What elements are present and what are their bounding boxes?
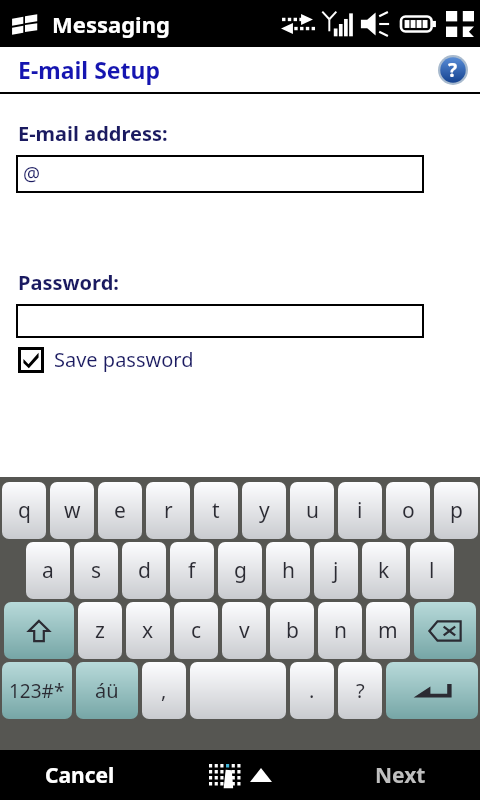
button[interactable]: s [74, 542, 118, 599]
staticText: h [282, 556, 295, 585]
staticText: j [333, 556, 339, 585]
button[interactable] [190, 662, 286, 719]
staticText: w [64, 496, 81, 525]
button[interactable] [16, 304, 424, 338]
button[interactable]: o [386, 482, 430, 539]
button[interactable]: d [122, 542, 166, 599]
staticText: l [429, 556, 435, 585]
staticText: k [378, 556, 390, 585]
staticText: a [42, 556, 54, 585]
button[interactable]: , [142, 662, 186, 719]
staticText: E-mail Setup [18, 54, 161, 85]
staticText: s [91, 556, 102, 585]
button[interactable]: ? [338, 662, 382, 719]
button[interactable]: w [50, 482, 94, 539]
staticText: Cancel [45, 761, 115, 790]
button[interactable]: Shift [4, 602, 74, 659]
staticText: f [188, 556, 196, 585]
button[interactable]: Help [438, 55, 468, 85]
staticText: d [138, 556, 151, 585]
staticText: ? [448, 57, 458, 83]
button[interactable]: n [318, 602, 362, 659]
staticText: Next [375, 761, 426, 790]
staticText: m [378, 616, 398, 645]
button[interactable]: i [338, 482, 382, 539]
button[interactable]: q [2, 482, 46, 539]
button[interactable]: j [314, 542, 358, 599]
button[interactable]: e [98, 482, 142, 539]
staticText: q [18, 496, 31, 525]
staticText: e [114, 496, 126, 525]
staticText: u [306, 496, 319, 525]
other: Enter [412, 680, 452, 702]
button[interactable]: . [290, 662, 334, 719]
button[interactable]: r [146, 482, 190, 539]
button[interactable]: u [290, 482, 334, 539]
staticText: b [286, 616, 299, 645]
button[interactable]: c [174, 602, 218, 659]
button[interactable]: f [170, 542, 214, 599]
staticText: Save password [54, 346, 194, 373]
staticText: o [402, 496, 415, 525]
button[interactable]: 123#* [2, 662, 72, 719]
button[interactable]: Backspace [414, 602, 476, 659]
button[interactable]: h [266, 542, 310, 599]
staticText: áü [95, 677, 119, 704]
staticText: z [95, 616, 105, 645]
staticText [235, 676, 241, 705]
button[interactable]: Save password [18, 346, 194, 373]
staticText: 123#* [9, 678, 65, 704]
staticText: . [309, 677, 315, 704]
button[interactable]: @ [16, 155, 424, 193]
staticText: p [450, 496, 463, 525]
other: Shift [27, 619, 51, 643]
button[interactable]: g [218, 542, 262, 599]
button[interactable]: Enter [386, 662, 478, 719]
staticText: r [164, 496, 173, 525]
button[interactable]: Cancel [0, 750, 160, 800]
staticText: v [239, 616, 250, 645]
button[interactable]: y [242, 482, 286, 539]
button[interactable]: áü [76, 662, 138, 719]
button[interactable]: k [362, 542, 406, 599]
button[interactable]: x [126, 602, 170, 659]
staticText: y [259, 496, 270, 525]
staticText: i [357, 496, 363, 525]
button[interactable]: l [410, 542, 454, 599]
button[interactable]: t [194, 482, 238, 539]
button[interactable]: Show keyboard [175, 750, 305, 800]
staticText: , [161, 677, 167, 704]
staticText: c [191, 616, 202, 645]
staticText: ? [356, 677, 365, 704]
staticText: t [212, 496, 220, 525]
other: Start [8, 10, 42, 38]
button[interactable]: m [366, 602, 410, 659]
staticText: Messaging [52, 9, 170, 39]
button[interactable]: Next [320, 750, 480, 800]
staticText: Password: [18, 269, 119, 296]
button[interactable]: p [434, 482, 478, 539]
staticText: @ [23, 161, 41, 187]
button[interactable]: b [270, 602, 314, 659]
staticText: n [334, 616, 347, 645]
other: Backspace [428, 620, 462, 642]
staticText: E-mail address: [18, 120, 168, 147]
button[interactable]: a [26, 542, 70, 599]
staticText: x [142, 616, 154, 645]
staticText: g [234, 556, 247, 585]
button[interactable]: z [78, 602, 122, 659]
button[interactable]: v [222, 602, 266, 659]
